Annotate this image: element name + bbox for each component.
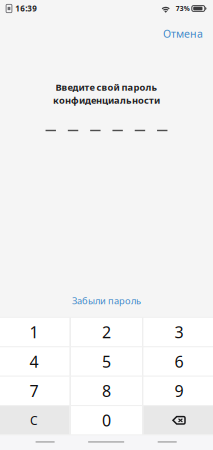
button[interactable]: 6 [143,347,213,376]
staticText: 4 [29,351,38,372]
staticText: 3 [174,321,183,343]
button[interactable]: 2 [71,318,142,346]
staticText: конфиденциальности [53,94,160,106]
button[interactable]: Delete [143,406,213,434]
staticText: 6 [174,351,183,372]
button[interactable]: 1 [0,318,69,346]
button[interactable]: C [0,406,69,434]
staticText: C [30,412,38,428]
button[interactable]: 9 [143,377,213,405]
staticText: 5 [102,351,111,372]
staticText: Отмена [163,26,203,41]
button[interactable]: 3 [143,318,213,346]
button[interactable]: 4 [0,347,69,376]
button[interactable]: 0 [71,406,142,434]
staticText: 9 [174,380,183,401]
staticText: 0 [102,410,111,431]
staticText: Забыли пароль [72,294,141,307]
staticText: 16:39 [15,3,37,14]
staticText: 73% [176,4,190,13]
button[interactable]: 7 [0,377,69,405]
button[interactable]: Recents [158,441,177,443]
staticText: 1 [29,321,38,343]
button[interactable]: Забыли пароль [60,289,153,312]
staticText: Введите свой пароль [55,81,157,93]
button[interactable]: Home [88,441,124,443]
staticText: 2 [102,321,111,343]
button[interactable]: 8 [71,377,142,405]
staticText: 8 [102,380,111,401]
button[interactable]: Back [36,441,55,443]
staticText: 7 [29,380,38,401]
button[interactable]: Отмена [153,20,213,47]
button[interactable]: 5 [71,347,142,376]
